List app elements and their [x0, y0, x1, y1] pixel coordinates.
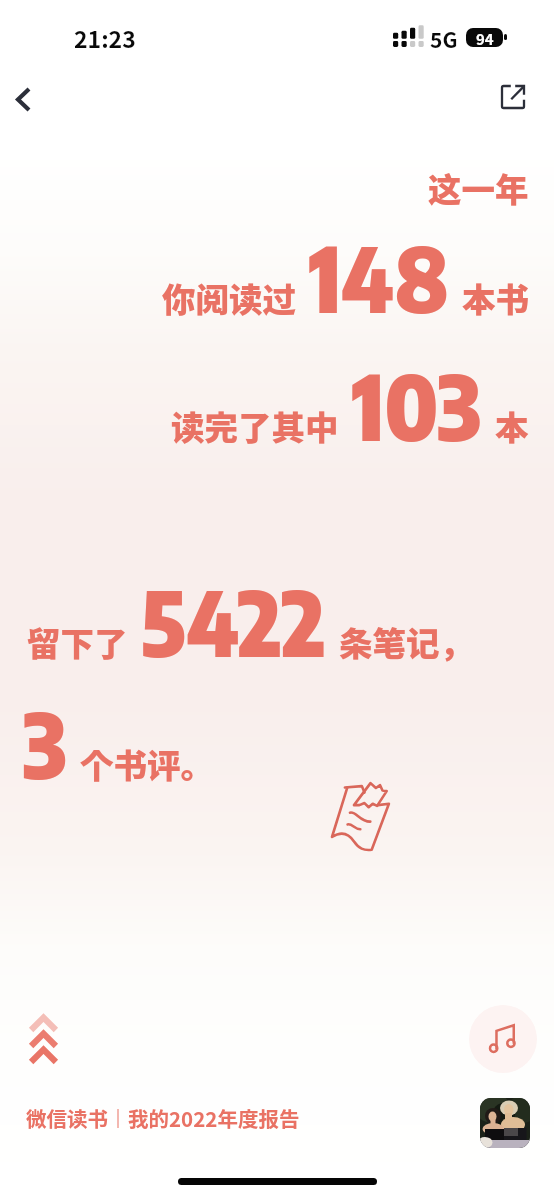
button[interactable]: Profile — [480, 1098, 530, 1148]
staticText: 5422 — [141, 565, 326, 676]
staticText: 我的2022年度报告 — [128, 1103, 300, 1133]
button[interactable]: Scroll up — [28, 1013, 59, 1068]
staticText: 个书评。 — [80, 739, 214, 788]
staticText: 103 — [352, 349, 482, 460]
staticText: 本 — [495, 401, 529, 450]
staticText: 你阅读过 — [162, 273, 296, 322]
staticText: 这一年 — [428, 163, 529, 212]
staticText: 148 — [309, 221, 449, 332]
button[interactable]: Music — [469, 1005, 537, 1073]
staticText: 5G — [430, 24, 458, 54]
staticText: 21:23 — [74, 21, 136, 54]
staticText: 本书 — [462, 273, 529, 322]
button[interactable]: Share — [488, 72, 538, 122]
staticText: 条笔记， — [339, 617, 473, 666]
staticText: 留下了 — [27, 617, 128, 666]
staticText: 微信读书 — [26, 1103, 108, 1133]
button[interactable]: Back — [0, 70, 52, 128]
staticText: 94 — [476, 28, 494, 47]
staticText: 读完了其中 — [171, 401, 339, 450]
staticText: 3 — [23, 687, 67, 798]
